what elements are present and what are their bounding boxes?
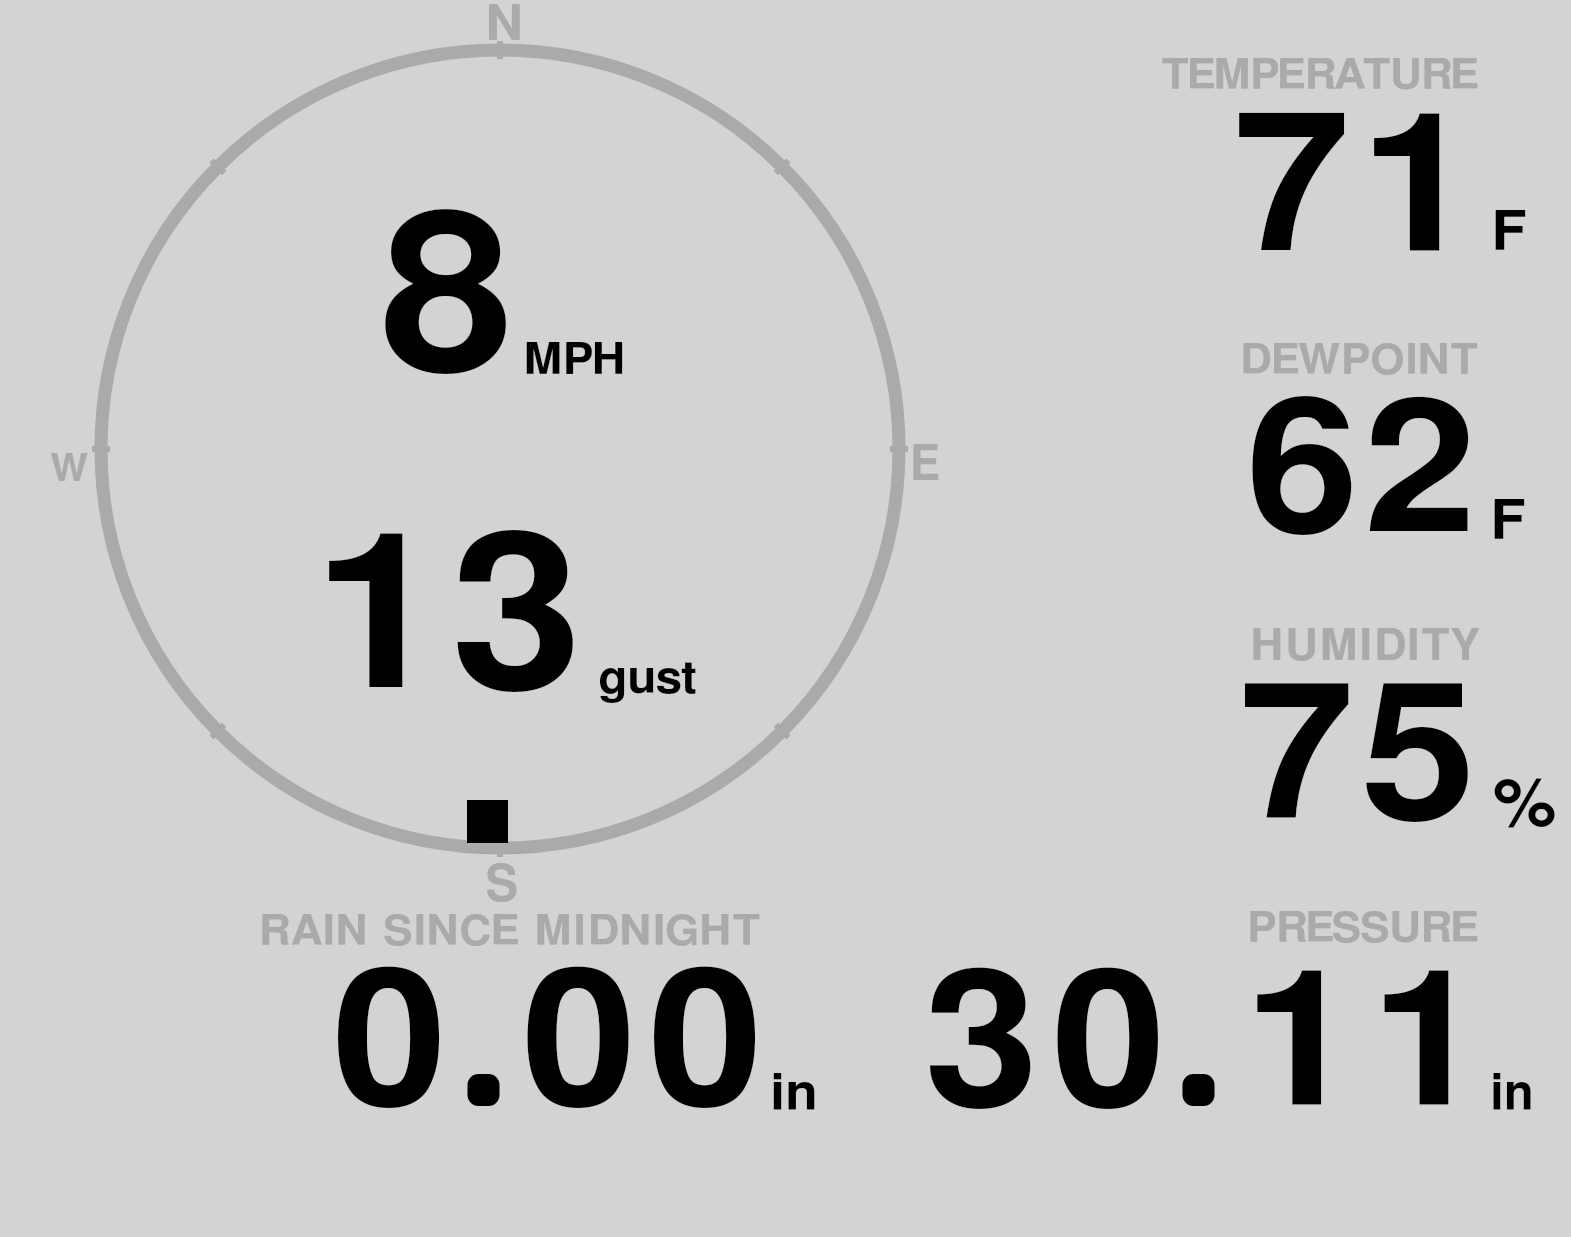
staticText: PRESSURE xyxy=(1247,908,1479,950)
staticText: 71 xyxy=(1233,96,1487,289)
staticText: 8 xyxy=(380,193,514,413)
staticText: HUMIDITY xyxy=(1250,626,1481,669)
staticText: TEMPERATURE xyxy=(1161,55,1478,97)
staticText: DEWPOINT xyxy=(1240,340,1479,382)
staticText: F xyxy=(1490,495,1527,550)
button[interactable]: Wind: 8 miles per hour, gusting 13, from… xyxy=(20,0,980,900)
staticText: MPH xyxy=(523,339,626,383)
staticText: RAIN SINCE MIDNIGHT xyxy=(259,911,762,953)
staticText: N xyxy=(485,1,524,50)
staticText: 75 xyxy=(1239,666,1483,856)
button[interactable]: Pressure 30.11 inches xyxy=(890,890,1560,1140)
staticText: in xyxy=(1490,1069,1534,1120)
staticText: % xyxy=(1493,772,1557,840)
staticText: E xyxy=(910,441,940,490)
staticText: S xyxy=(485,860,519,911)
staticText: 13 xyxy=(313,513,589,730)
button[interactable]: Temperature 71 degrees Fahrenheit xyxy=(1000,20,1560,290)
staticText: in xyxy=(770,1069,818,1120)
staticText: 30.11 xyxy=(924,954,1498,1143)
button[interactable]: Rain since midnight 0.00 inches xyxy=(210,890,850,1140)
button[interactable]: Dew point 62 degrees Fahrenheit xyxy=(1000,300,1560,570)
staticText: F xyxy=(1491,206,1528,261)
staticText: 62 xyxy=(1246,382,1482,568)
staticText: W xyxy=(50,451,89,489)
button[interactable]: Humidity 75 percent xyxy=(1000,585,1560,855)
staticText: gust xyxy=(598,657,697,703)
staticText: 0.00 xyxy=(332,952,776,1142)
